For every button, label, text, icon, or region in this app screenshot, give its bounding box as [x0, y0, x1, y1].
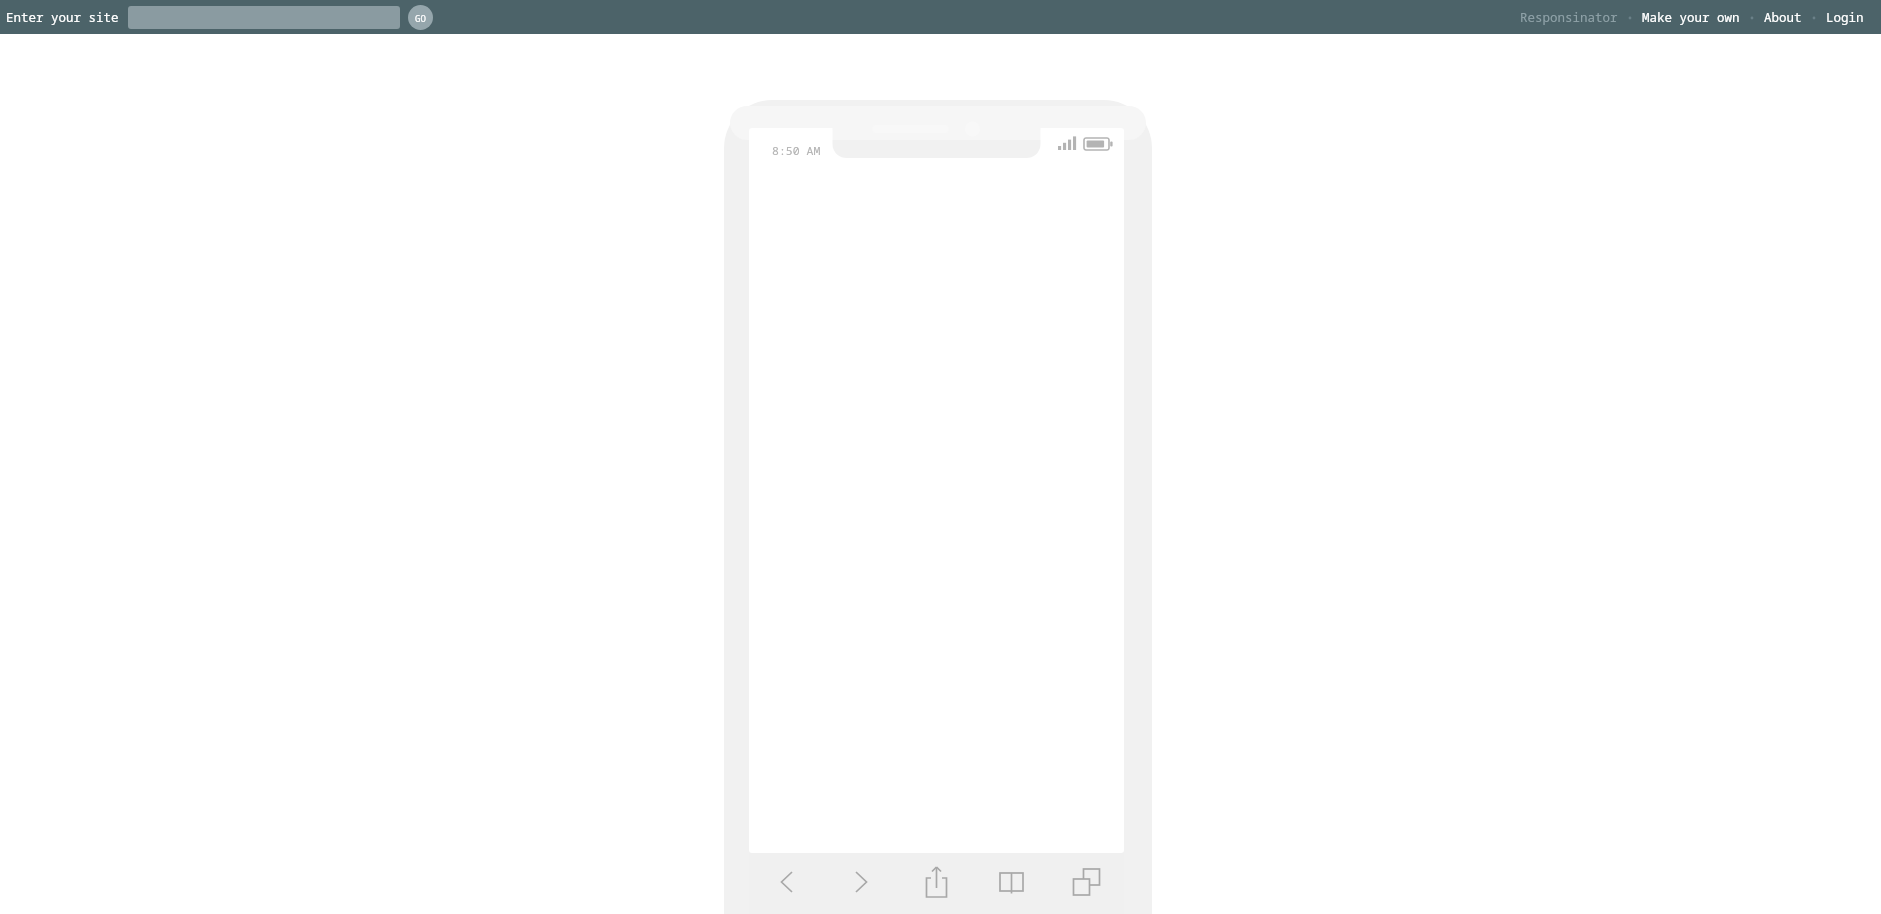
- button[interactable]: Bookmarks: [974, 853, 1049, 914]
- button[interactable]: Login: [1819, 4, 1871, 31]
- staticText: 8:50 AM: [772, 143, 821, 159]
- button[interactable]: GO: [408, 5, 433, 30]
- staticText: Make your own: [1642, 9, 1740, 26]
- staticText: GO: [415, 12, 426, 24]
- staticText: Login: [1826, 9, 1864, 26]
- button[interactable]: Back: [749, 853, 824, 914]
- button[interactable]: Forward: [824, 853, 899, 914]
- button[interactable]: About: [1757, 4, 1809, 31]
- staticText: Responsinator: [1520, 9, 1618, 26]
- staticText: About: [1764, 9, 1802, 26]
- button[interactable]: Responsinator: [1513, 4, 1625, 31]
- button[interactable]: Share: [899, 853, 974, 914]
- button[interactable]: Make your own: [1635, 4, 1747, 31]
- button[interactable]: Tabs: [1049, 853, 1124, 914]
- staticText: Enter your site: [6, 9, 119, 26]
